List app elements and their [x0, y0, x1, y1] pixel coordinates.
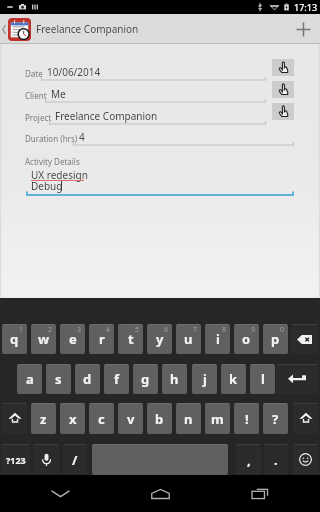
button[interactable]: Client: [45, 86, 266, 106]
button[interactable]: z: [31, 403, 56, 434]
staticText: 2: [48, 325, 53, 335]
button[interactable]: r: [89, 324, 114, 354]
staticText: 4: [79, 130, 85, 144]
staticText: 5: [135, 325, 140, 335]
button[interactable]: !: [234, 403, 259, 434]
staticText: o: [242, 330, 251, 348]
button[interactable]: f: [104, 364, 129, 394]
staticText: a: [26, 370, 34, 388]
staticText: 10/06/2014: [47, 65, 101, 79]
button[interactable]: Activity details: [26, 166, 294, 197]
staticText: n: [184, 410, 193, 428]
button[interactable]: e: [60, 324, 85, 354]
button[interactable]: n: [176, 403, 201, 434]
staticText: ?123: [6, 454, 26, 466]
staticText: 1: [19, 325, 24, 335]
button[interactable]: ,: [236, 444, 261, 475]
staticText: Client: [25, 90, 47, 101]
staticText: d: [83, 370, 92, 388]
staticText: 8: [222, 325, 227, 335]
staticText: l: [261, 370, 265, 388]
staticText: Activity Details: [25, 156, 80, 167]
staticText: u: [184, 330, 193, 348]
button[interactable]: Recent apps: [220, 475, 300, 512]
button[interactable]: Duration (hrs): [73, 129, 294, 149]
button[interactable]: w: [31, 324, 56, 354]
button[interactable]: u: [176, 324, 201, 354]
staticText: w: [38, 330, 50, 348]
staticText: Debug: [31, 179, 63, 193]
button[interactable]: Project: [49, 108, 266, 128]
button[interactable]: Choose Client: [272, 81, 294, 98]
button[interactable]: h: [162, 364, 187, 394]
staticText: e: [69, 330, 77, 348]
button[interactable]: ?: [263, 403, 288, 434]
staticText: 3: [77, 325, 82, 335]
button[interactable]: /: [63, 444, 87, 475]
button[interactable]: v: [118, 403, 143, 434]
button[interactable]: shift: [2, 403, 27, 434]
button[interactable]: g: [133, 364, 158, 394]
staticText: x: [69, 410, 77, 428]
button[interactable]: d: [75, 364, 100, 394]
button[interactable]: k: [221, 364, 246, 394]
staticText: /: [72, 451, 78, 469]
button[interactable]: a: [17, 364, 42, 394]
button[interactable]: q: [2, 324, 27, 354]
staticText: p: [271, 330, 280, 348]
button[interactable]: Choose Project: [272, 103, 294, 120]
staticText: v: [127, 410, 135, 428]
button[interactable]: Add: [286, 14, 320, 44]
button[interactable]: emoji: [293, 444, 318, 475]
staticText: i: [216, 330, 220, 348]
button[interactable]: .: [264, 444, 288, 475]
staticText: s: [55, 370, 62, 388]
staticText: 9: [251, 325, 256, 335]
button[interactable]: o: [234, 324, 259, 354]
button[interactable]: p: [263, 324, 288, 354]
staticText: Date: [25, 68, 43, 79]
staticText: y: [156, 330, 164, 348]
staticText: 7: [193, 325, 198, 335]
button[interactable]: l: [250, 364, 275, 394]
button[interactable]: enter: [276, 364, 318, 394]
button[interactable]: m: [205, 403, 230, 434]
staticText: r: [99, 330, 105, 348]
staticText: ?: [272, 410, 279, 428]
staticText: Freelance Companion: [36, 22, 139, 36]
button[interactable]: Date: [41, 64, 266, 84]
button[interactable]: mic: [33, 444, 59, 475]
staticText: Duration (hrs): [25, 133, 78, 144]
staticText: 0: [280, 325, 285, 335]
staticText: k: [229, 370, 238, 388]
button[interactable]: t: [118, 324, 143, 354]
staticText: j: [203, 370, 207, 388]
button[interactable]: x: [60, 403, 85, 434]
staticText: 4: [106, 325, 111, 335]
button[interactable]: y: [147, 324, 172, 354]
staticText: t: [128, 330, 134, 348]
staticText: Project: [25, 112, 52, 123]
staticText: z: [40, 410, 47, 428]
button[interactable]: j: [192, 364, 217, 394]
staticText: b: [155, 410, 164, 428]
button[interactable]: Navigate up: [0, 14, 31, 44]
staticText: .: [274, 451, 278, 469]
button[interactable]: i: [205, 324, 230, 354]
button[interactable]: Home: [120, 475, 200, 512]
staticText: ,: [247, 451, 251, 469]
staticText: UX redesign: [31, 168, 88, 182]
staticText: g: [141, 370, 150, 388]
staticText: q: [10, 330, 19, 348]
staticText: 17:13: [294, 1, 318, 13]
staticText: c: [98, 410, 105, 428]
button[interactable]: back: [291, 324, 318, 354]
button[interactable]: ?123: [1, 444, 30, 475]
button[interactable]: Hide keyboard: [20, 475, 100, 512]
button[interactable]: Choose Date: [272, 59, 294, 76]
button[interactable]: c: [89, 403, 114, 434]
button[interactable]: b: [147, 403, 172, 434]
button[interactable]: s: [46, 364, 71, 394]
button[interactable]: shift: [293, 403, 318, 434]
